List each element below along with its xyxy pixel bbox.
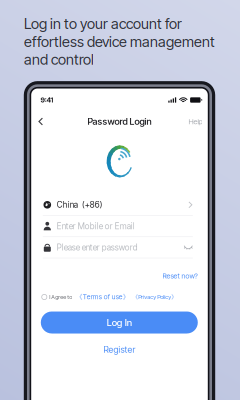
staticText: Password Login <box>87 116 151 127</box>
button[interactable]: Agree to terms <box>41 293 48 301</box>
button[interactable]: Help <box>180 112 202 130</box>
staticText: Log In <box>107 317 132 328</box>
button[interactable]: Reset now? <box>31 271 197 280</box>
button[interactable]: Enter Mobile or Email <box>43 216 193 237</box>
staticText: I Agree to <box>49 294 72 300</box>
button[interactable]: 《Terms of use》 <box>76 293 130 301</box>
staticText: effortless device management <box>24 33 215 50</box>
staticText: Enter Mobile or Email <box>57 221 135 231</box>
staticText: 《Terms of use》 <box>76 293 130 301</box>
staticText: Help <box>188 117 202 126</box>
staticText: 9:41 <box>40 96 53 104</box>
staticText: Reset now? <box>162 272 197 280</box>
button[interactable]: 《Privacy Policy》 <box>132 293 177 301</box>
staticText: Please enter password <box>57 242 138 252</box>
button[interactable]: Log In <box>41 311 198 333</box>
staticText: Register <box>103 344 135 355</box>
button[interactable]: Register <box>31 344 208 354</box>
button[interactable]: Please enter password <box>43 237 193 258</box>
staticText: Log in to your account for <box>24 15 182 33</box>
button[interactable]: China (+86) <box>43 194 193 216</box>
staticText: and control <box>24 51 94 68</box>
staticText: China (+86) <box>57 200 103 210</box>
button[interactable]: Back <box>33 112 49 130</box>
staticText: 《Privacy Policy》 <box>132 293 177 301</box>
